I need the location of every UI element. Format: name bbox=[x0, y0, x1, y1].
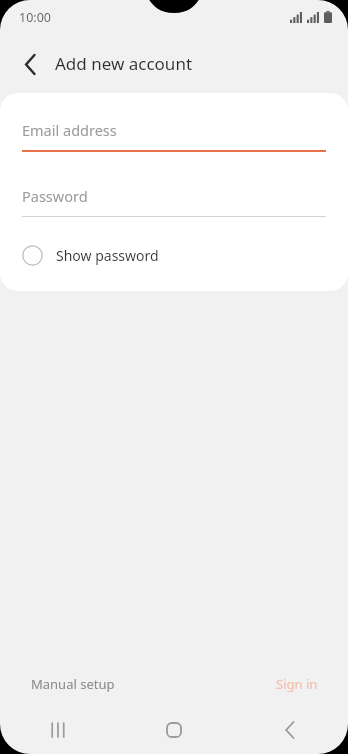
staticText: Sign in bbox=[276, 675, 318, 693]
staticText: Email address bbox=[22, 120, 117, 140]
button[interactable]: Sign in bbox=[262, 668, 332, 700]
staticText: Show password bbox=[56, 246, 159, 265]
button[interactable]: Home bbox=[116, 706, 232, 754]
button[interactable]: Show password bbox=[0, 236, 348, 274]
staticText: Password bbox=[22, 186, 88, 206]
button[interactable]: Email address bbox=[0, 120, 348, 152]
button[interactable]: Back bbox=[11, 45, 49, 83]
button[interactable]: Recent apps bbox=[0, 706, 116, 754]
staticText: 10:00 bbox=[19, 9, 51, 26]
staticText: Manual setup bbox=[31, 675, 115, 693]
button[interactable]: Manual setup bbox=[16, 668, 130, 700]
button[interactable]: Password bbox=[0, 186, 348, 217]
button[interactable]: Back bbox=[232, 706, 348, 754]
staticText: Add new account bbox=[55, 52, 193, 75]
